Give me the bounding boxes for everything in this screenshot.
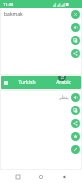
button[interactable]: Back [59,172,69,182]
button[interactable]: Arabic [45,76,81,89]
button[interactable]: Turkish [9,76,45,89]
staticText: ينظر [59,94,69,100]
button[interactable]: Swap languages [58,76,66,81]
button[interactable]: Copy [71,106,80,115]
button[interactable]: Home [36,172,46,182]
button[interactable]: Recents [13,172,23,182]
staticText: Arabic [56,79,71,86]
button[interactable]: Favorite [71,132,80,141]
button[interactable]: Listen [71,23,80,32]
button[interactable]: Copy [71,36,80,45]
staticText: Turkish [18,79,36,86]
button[interactable]: Clear [71,10,80,19]
button[interactable]: Share [71,119,80,128]
button[interactable]: Share [71,49,80,58]
staticText: bakmak [4,11,23,18]
button[interactable]: Edit [71,145,80,154]
button[interactable]: Menu [3,80,9,86]
staticText: 11:08 [3,2,14,7]
button[interactable]: Listen [71,93,80,102]
